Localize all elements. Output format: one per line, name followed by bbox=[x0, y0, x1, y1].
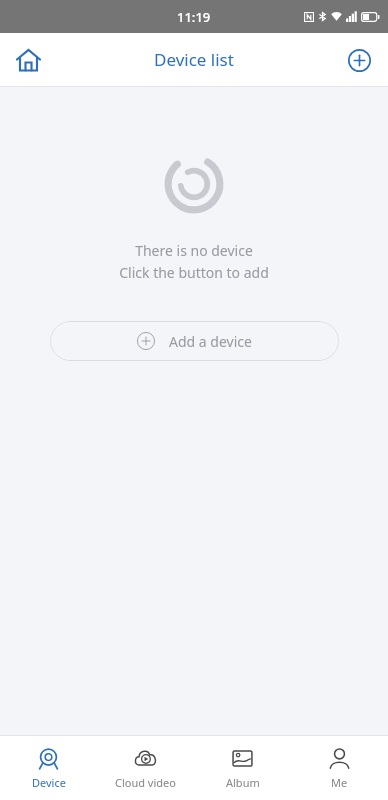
staticText: Device list bbox=[154, 48, 234, 71]
button[interactable]: Device bbox=[0, 736, 97, 800]
staticText: Cloud video bbox=[115, 775, 176, 790]
button[interactable]: Add device bbox=[338, 39, 380, 81]
button[interactable]: Add a device bbox=[50, 321, 339, 361]
staticText: Album bbox=[226, 775, 260, 790]
staticText: Add a device bbox=[169, 332, 252, 351]
staticText: Click the button to add bbox=[119, 263, 269, 282]
staticText: There is no device bbox=[135, 241, 253, 260]
staticText: Me bbox=[331, 775, 348, 790]
staticText: 11:19 bbox=[177, 8, 211, 26]
button[interactable]: Album bbox=[194, 736, 291, 800]
button[interactable]: Cloud video bbox=[97, 736, 194, 800]
button[interactable]: Me bbox=[291, 736, 388, 800]
button[interactable]: Home bbox=[6, 38, 50, 82]
staticText: Device bbox=[32, 775, 66, 790]
